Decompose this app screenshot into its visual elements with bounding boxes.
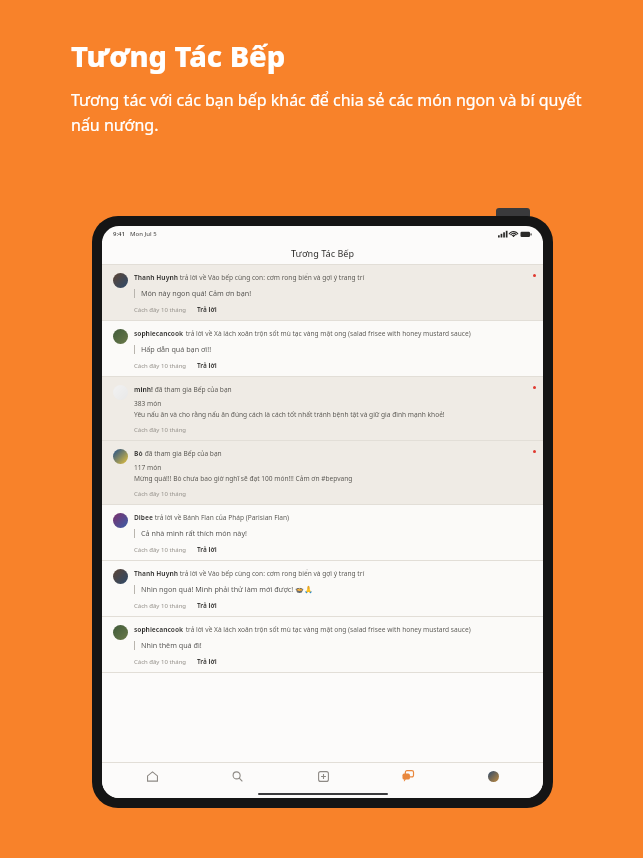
- staticText: Nhìn ngon quá! Mình phải thử làm mới đượ…: [141, 584, 313, 594]
- staticText: Thanh Huynh: [134, 569, 178, 578]
- button[interactable]: sophiecancook: [102, 617, 543, 673]
- button[interactable]: Profile: [458, 763, 528, 789]
- staticText: Dibee: [134, 513, 153, 522]
- button[interactable]: Notifications: [373, 763, 443, 789]
- staticText: Nhìn thêm quá đi!: [141, 640, 202, 650]
- staticText: Cách đây 10 tháng: [134, 426, 187, 434]
- button[interactable]: minh!: [102, 377, 543, 441]
- button[interactable]: Trả lời: [197, 361, 217, 370]
- staticText: Hấp dẫn quá bạn ơi!!: [141, 344, 212, 354]
- staticText: Trả lời: [197, 545, 217, 554]
- staticText: Tương tác với các bạn bếp khác để chia s…: [71, 89, 583, 135]
- staticText: trả lời về Vào bếp cùng con: cơm rong bi…: [178, 569, 365, 578]
- button[interactable]: Trả lời: [197, 305, 217, 314]
- staticText: sophiecancook: [134, 625, 184, 634]
- staticText: minh!: [134, 385, 153, 394]
- button[interactable]: Thanh Huynh: [102, 265, 543, 321]
- button[interactable]: Home: [117, 763, 187, 789]
- button[interactable]: Search: [202, 763, 272, 789]
- staticText: Thanh Huynh: [134, 273, 178, 282]
- button[interactable]: Thanh Huynh: [102, 561, 543, 617]
- staticText: đã tham gia Bếp của bạn: [143, 449, 222, 458]
- staticText: Trả lời: [197, 305, 217, 314]
- staticText: Cách đây 10 tháng: [134, 362, 187, 370]
- staticText: trả lời về Xà lách xoăn trộn sốt mù tạc …: [184, 329, 471, 338]
- staticText: Trả lời: [197, 601, 217, 610]
- staticText: Tương Tác Bếp: [291, 247, 355, 259]
- staticText: Món này ngon quá! Cảm ơn bạn!: [141, 288, 252, 298]
- staticText: Trả lời: [197, 657, 217, 666]
- staticText: Cách đây 10 tháng: [134, 602, 187, 610]
- staticText: Trả lời: [197, 361, 217, 370]
- staticText: Cách đây 10 tháng: [134, 546, 187, 554]
- button[interactable]: Add: [288, 763, 358, 789]
- staticText: Mon Jul 5: [130, 230, 157, 238]
- staticText: đã tham gia Bếp của bạn: [153, 385, 232, 394]
- staticText: trả lời về Xà lách xoăn trộn sốt mù tạc …: [184, 625, 471, 634]
- staticText: Mừng quá!!! Bò chưa bao giờ nghĩ sẽ đạt …: [134, 474, 353, 483]
- staticText: trả lời về Vào bếp cùng con: cơm rong bi…: [178, 273, 365, 282]
- button[interactable]: Bò: [102, 441, 543, 505]
- button[interactable]: Dibee: [102, 505, 543, 561]
- staticText: Bò: [134, 449, 143, 458]
- button[interactable]: Trả lời: [197, 657, 217, 666]
- button[interactable]: Trả lời: [197, 601, 217, 610]
- staticText: Cách đây 10 tháng: [134, 306, 187, 314]
- staticText: Cả nhà mình rất thích món này!: [141, 528, 247, 538]
- staticText: 383 món: [134, 399, 162, 408]
- staticText: Yêu nấu ăn và cho rằng nấu ăn đúng cách …: [134, 410, 445, 419]
- staticText: 9:41: [113, 230, 125, 238]
- staticText: sophiecancook: [134, 329, 184, 338]
- staticText: Tương Tác Bếp: [71, 36, 286, 75]
- staticText: Cách đây 10 tháng: [134, 490, 187, 498]
- staticText: trả lời về Bánh Flan của Pháp (Parisian …: [153, 513, 290, 522]
- staticText: Cách đây 10 tháng: [134, 658, 187, 666]
- staticText: 117 món: [134, 463, 162, 472]
- button[interactable]: sophiecancook: [102, 321, 543, 377]
- button[interactable]: Trả lời: [197, 545, 217, 554]
